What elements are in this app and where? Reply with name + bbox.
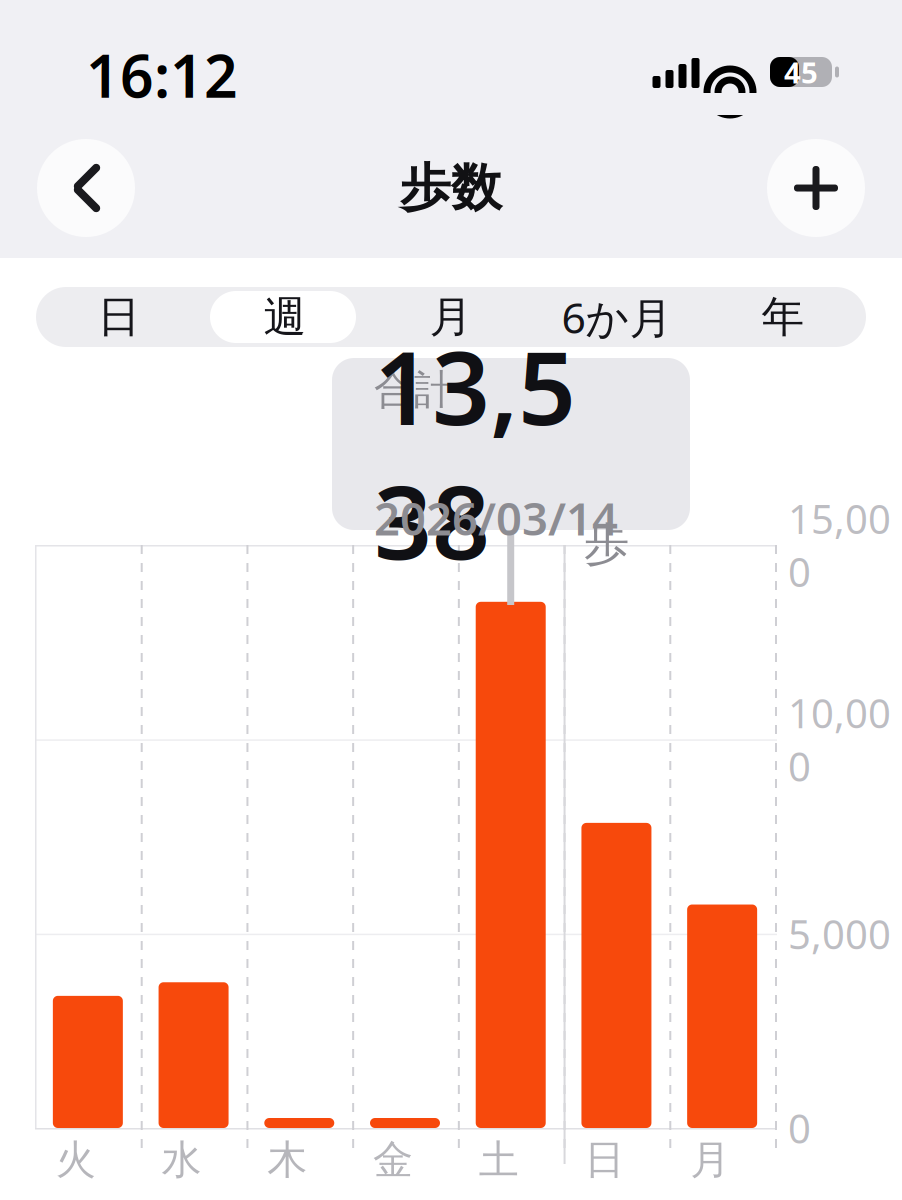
staticText: 日 <box>97 291 140 343</box>
button[interactable]: 月 <box>368 287 534 347</box>
staticText: 火 <box>56 1135 96 1184</box>
button[interactable]: 日 <box>36 287 202 347</box>
button[interactable]: 6か月 <box>534 287 700 347</box>
staticText: 歩 <box>584 517 629 572</box>
staticText: 木 <box>267 1135 307 1184</box>
staticText: 15,000 <box>788 492 891 598</box>
button[interactable]: 追加 <box>767 139 865 237</box>
staticText: 5,000 <box>788 907 891 960</box>
button[interactable]: 戻る <box>37 139 135 237</box>
staticText: 10,000 <box>788 686 891 792</box>
staticText: 歩数 <box>400 157 502 219</box>
staticText: 週 <box>263 291 306 343</box>
staticText: 年 <box>761 291 804 343</box>
staticText: 6か月 <box>561 289 672 345</box>
staticText: 日 <box>584 1135 624 1184</box>
staticText: 月 <box>429 291 472 343</box>
button[interactable]: 週 <box>202 287 368 347</box>
staticText: 金 <box>373 1135 413 1184</box>
button[interactable]: 年 <box>700 287 866 347</box>
staticText: 土 <box>479 1135 519 1184</box>
staticText: 13,538 <box>374 318 576 587</box>
staticText: 月 <box>690 1135 730 1184</box>
staticText: 0 <box>788 1101 811 1154</box>
staticText: 2026/03/14 <box>374 488 618 548</box>
staticText: 16:12 <box>86 36 238 114</box>
staticText: 45 <box>784 52 818 91</box>
staticText: 合計 <box>374 365 454 414</box>
staticText: 水 <box>162 1135 202 1184</box>
